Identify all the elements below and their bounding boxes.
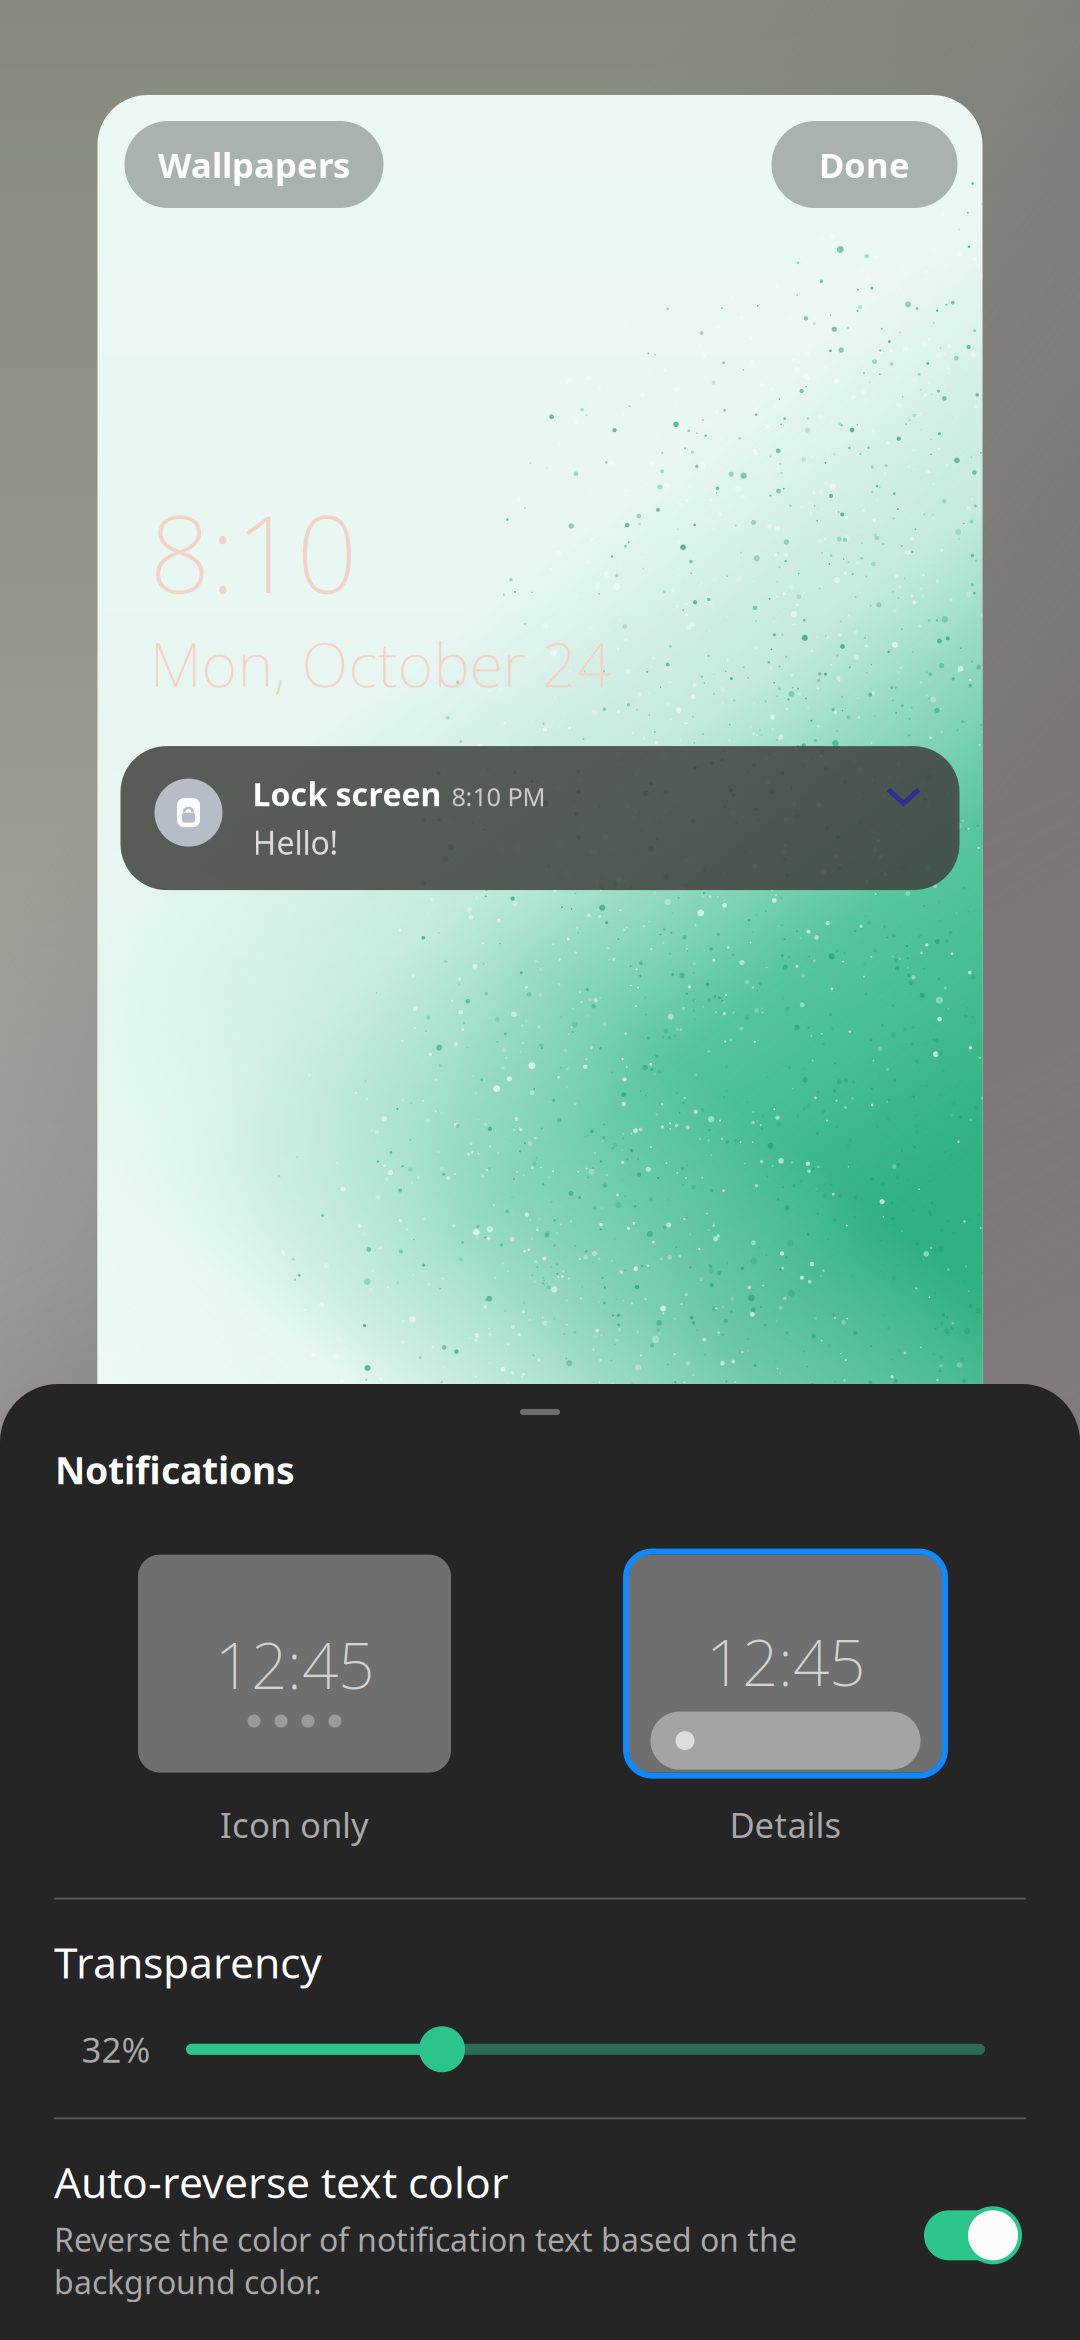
button[interactable]: 12:45 — [135, 1552, 454, 1848]
staticText: 8:10 — [149, 481, 357, 623]
staticText: 12:45 — [215, 1622, 374, 1707]
button[interactable]: Wallpapers — [124, 121, 383, 208]
staticText: Hello! — [252, 821, 338, 864]
staticText: 12:45 — [706, 1619, 865, 1704]
button[interactable]: Done — [771, 121, 957, 208]
staticText: Done — [819, 141, 910, 187]
staticText: Transparency — [54, 1934, 322, 1990]
staticText: Mon, October 24 — [149, 623, 611, 704]
staticText: Details — [729, 1802, 841, 1848]
staticText: Auto-reverse text color — [54, 2153, 509, 2210]
staticText: 8:10 PM — [451, 780, 545, 813]
button[interactable]: Auto-reverse text color — [922, 2205, 1022, 2265]
staticText: 32% — [81, 2026, 150, 2072]
staticText: Notifications — [55, 1445, 295, 1495]
button[interactable]: 12:45 — [626, 1552, 945, 1848]
staticText: Icon only — [220, 1802, 369, 1848]
staticText: Lock screen — [252, 773, 441, 815]
staticText: Wallpapers — [158, 141, 350, 187]
staticText: Reverse the color of notification text b… — [54, 2218, 797, 2303]
